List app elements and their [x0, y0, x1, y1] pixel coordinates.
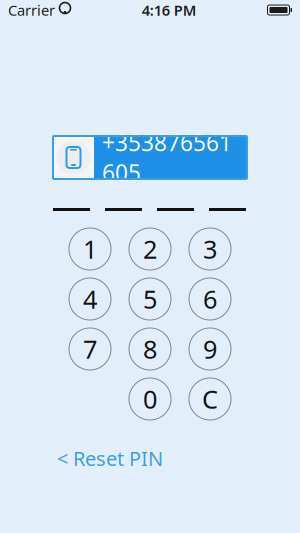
staticText: 7: [83, 332, 97, 366]
button[interactable]: 0: [129, 378, 171, 420]
staticText: 8: [143, 332, 157, 366]
button[interactable]: 7: [69, 328, 111, 370]
button[interactable]: C: [189, 378, 231, 420]
button[interactable]: 4: [69, 278, 111, 320]
staticText: 5: [143, 282, 157, 316]
staticText: 1: [83, 232, 97, 266]
staticText: [55, 0, 59, 20]
button[interactable]: 6: [189, 278, 231, 320]
button[interactable]: 5: [129, 278, 171, 320]
button[interactable]: < Reset PIN: [53, 442, 167, 475]
staticText: Carrier: [8, 0, 55, 20]
staticText: C: [202, 382, 218, 416]
button[interactable]: 1: [69, 228, 111, 270]
staticText: 9: [203, 332, 217, 366]
button[interactable]: 2: [129, 228, 171, 270]
button[interactable]: +353876561605: [53, 136, 247, 179]
staticText: 4:16 PM: [142, 0, 197, 20]
staticText: 3: [203, 232, 217, 266]
button[interactable]: 9: [189, 328, 231, 370]
staticText: 4: [83, 282, 97, 316]
staticText: 0: [143, 382, 157, 416]
staticText: 6: [203, 282, 217, 316]
staticText: +353876561605: [102, 127, 232, 188]
button[interactable]: 8: [129, 328, 171, 370]
button[interactable]: 3: [189, 228, 231, 270]
staticText: 2: [143, 232, 157, 266]
staticText: < Reset PIN: [57, 445, 163, 472]
